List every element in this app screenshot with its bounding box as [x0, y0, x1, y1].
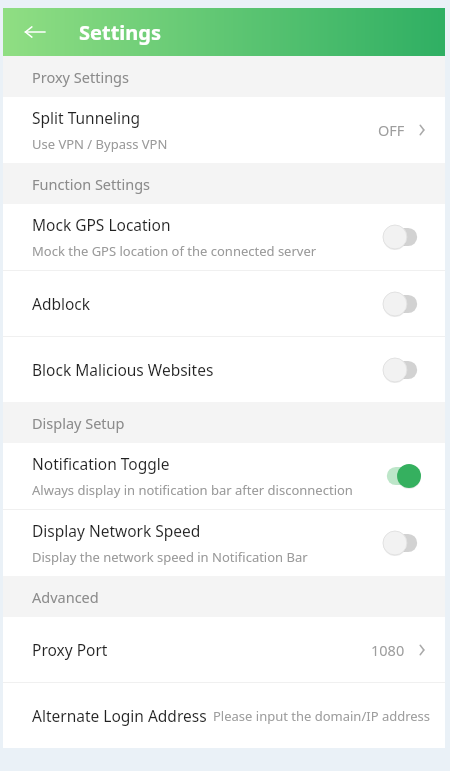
button[interactable]: Toggle off [383, 357, 421, 383]
staticText: Block Malicious Websites [32, 359, 214, 380]
button[interactable]: Toggle off [383, 530, 421, 556]
button[interactable]: Proxy Port [3, 617, 445, 682]
staticText: Advanced [32, 587, 99, 607]
button[interactable]: Toggle off [383, 291, 421, 317]
button[interactable]: Alternate Login Address [3, 683, 445, 748]
button[interactable]: Toggle off [383, 224, 421, 250]
staticText: Mock the GPS location of the connected s… [32, 242, 317, 260]
staticText: 1080 [371, 640, 405, 660]
staticText: Proxy Port [32, 639, 108, 660]
button[interactable]: Notification Toggle [3, 443, 445, 509]
staticText: Settings [79, 19, 161, 46]
button[interactable]: Display Network Speed [3, 510, 445, 576]
button[interactable]: Mock GPS Location [3, 204, 445, 270]
staticText: Display the network speed in Notificatio… [32, 548, 308, 566]
staticText: Split Tunneling [32, 107, 141, 128]
staticText: Always display in notification bar after… [32, 481, 353, 499]
button[interactable]: Back [13, 10, 57, 54]
staticText: Use VPN / Bypass VPN [32, 135, 168, 153]
staticText: Display Network Speed [32, 520, 201, 541]
button[interactable]: Block Malicious Websites [3, 337, 445, 402]
button[interactable]: Toggle on [383, 463, 421, 489]
staticText: OFF [378, 120, 405, 140]
button[interactable]: Split Tunneling [3, 97, 445, 163]
staticText: Function Settings [32, 174, 151, 194]
staticText: Notification Toggle [32, 453, 170, 474]
staticText: Adblock [32, 293, 91, 314]
staticText: Mock GPS Location [32, 214, 171, 235]
button[interactable]: Adblock [3, 271, 445, 336]
staticText: Alternate Login Address [32, 705, 207, 726]
staticText: Proxy Settings [32, 67, 129, 87]
staticText: Display Setup [32, 413, 125, 433]
staticText: Please input the domain/IP address [213, 707, 431, 725]
